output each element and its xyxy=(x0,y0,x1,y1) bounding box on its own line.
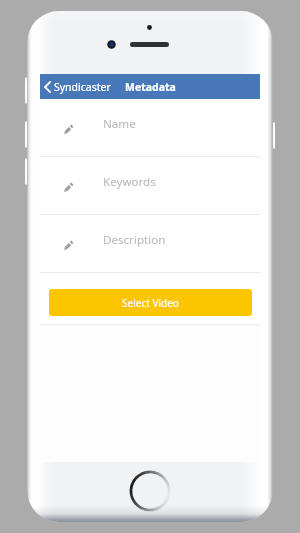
staticText: Syndicaster xyxy=(54,80,111,94)
button[interactable]: Select Video xyxy=(49,289,252,316)
staticText: Name xyxy=(103,116,136,132)
staticText: Description xyxy=(103,232,166,248)
button[interactable]: Home xyxy=(129,470,171,512)
button[interactable]: Keywords xyxy=(40,157,260,214)
staticText: Metadata xyxy=(125,80,176,94)
staticText: Keywords xyxy=(103,174,156,190)
button[interactable]: Description xyxy=(40,215,260,272)
staticText: Select Video xyxy=(122,296,179,310)
button[interactable]: Syndicaster xyxy=(40,80,117,94)
button[interactable]: Name xyxy=(40,99,260,156)
